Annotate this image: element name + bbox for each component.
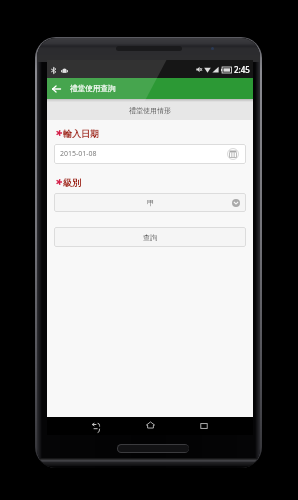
- button[interactable]: Back: [47, 78, 66, 99]
- staticText: 禮堂使用情形: [129, 106, 171, 115]
- button[interactable]: 甲: [54, 193, 246, 212]
- staticText: 禮堂使用查詢: [70, 84, 116, 94]
- button[interactable]: Home: [136, 417, 164, 435]
- button[interactable]: Back: [82, 417, 110, 435]
- staticText: 查詢: [143, 233, 158, 242]
- staticText: 輸入日期: [63, 128, 99, 138]
- other: Expand: [232, 199, 240, 207]
- staticText: 2015-01-08: [60, 149, 97, 159]
- button[interactable]: 2015-01-08: [54, 144, 246, 164]
- staticText: 級別: [63, 177, 81, 187]
- button[interactable]: Pick date: [227, 148, 239, 160]
- button[interactable]: Recent apps: [190, 417, 218, 435]
- button[interactable]: 查詢: [54, 227, 246, 247]
- staticText: 2:45: [234, 64, 250, 75]
- staticText: 甲: [147, 198, 154, 207]
